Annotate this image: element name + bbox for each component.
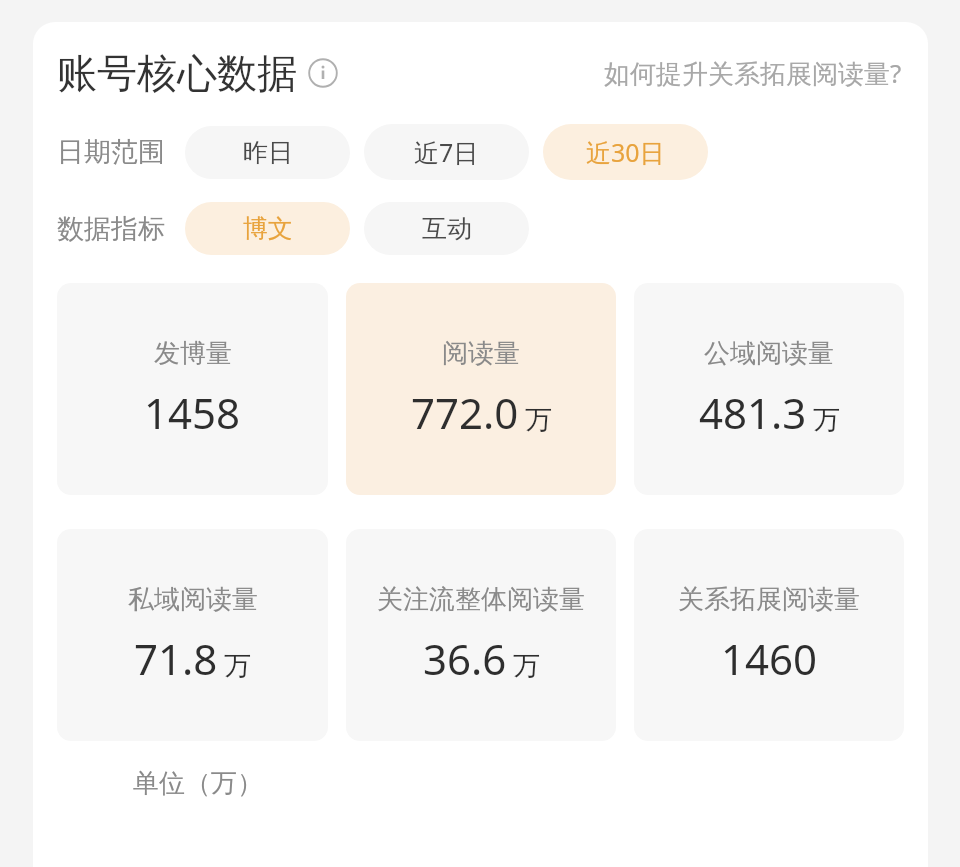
button[interactable]: 博文 <box>185 202 350 255</box>
staticText: 万 <box>525 403 552 437</box>
button[interactable]: 如何提升关系拓展阅读量? <box>600 51 906 95</box>
button[interactable]: 昨日 <box>185 126 350 179</box>
staticText: 关注流整体阅读量 <box>377 583 585 616</box>
button[interactable]: 公域阅读量 <box>634 283 904 495</box>
button[interactable]: 说明 <box>307 57 339 89</box>
staticText: 1458 <box>144 384 241 441</box>
staticText: 日期范围 <box>57 135 165 169</box>
staticText: 万 <box>513 649 540 683</box>
staticText: 私域阅读量 <box>128 583 258 616</box>
staticText: 发博量 <box>154 337 232 370</box>
staticText: 单位（万） <box>133 767 263 800</box>
button[interactable]: 近30日 <box>543 124 708 180</box>
staticText: 公域阅读量 <box>704 337 834 370</box>
staticText: 近30日 <box>586 135 665 169</box>
staticText: 772.0 <box>411 384 519 441</box>
staticText: 481.3 <box>699 384 807 441</box>
staticText: 昨日 <box>243 137 293 168</box>
button[interactable]: 互动 <box>364 202 529 255</box>
staticText: 近7日 <box>414 135 479 169</box>
staticText: 36.6 <box>423 630 507 687</box>
staticText: 万 <box>224 649 251 683</box>
button[interactable]: 近7日 <box>364 124 529 180</box>
button[interactable]: 阅读量 <box>346 283 616 495</box>
staticText: 关系拓展阅读量 <box>678 583 860 616</box>
staticText: 数据指标 <box>57 212 165 246</box>
staticText: 1460 <box>721 630 818 687</box>
staticText: 互动 <box>422 213 472 244</box>
staticText: 万 <box>813 403 840 437</box>
staticText: 博文 <box>243 213 293 244</box>
button[interactable]: 私域阅读量 <box>57 529 328 741</box>
staticText: 阅读量 <box>442 337 520 370</box>
button[interactable]: 发博量 <box>57 283 328 495</box>
staticText: 账号核心数据 <box>57 48 297 98</box>
button[interactable]: 关系拓展阅读量 <box>634 529 904 741</box>
button[interactable]: 关注流整体阅读量 <box>346 529 616 741</box>
staticText: 如何提升关系拓展阅读量? <box>604 55 902 91</box>
staticText: 71.8 <box>134 630 218 687</box>
